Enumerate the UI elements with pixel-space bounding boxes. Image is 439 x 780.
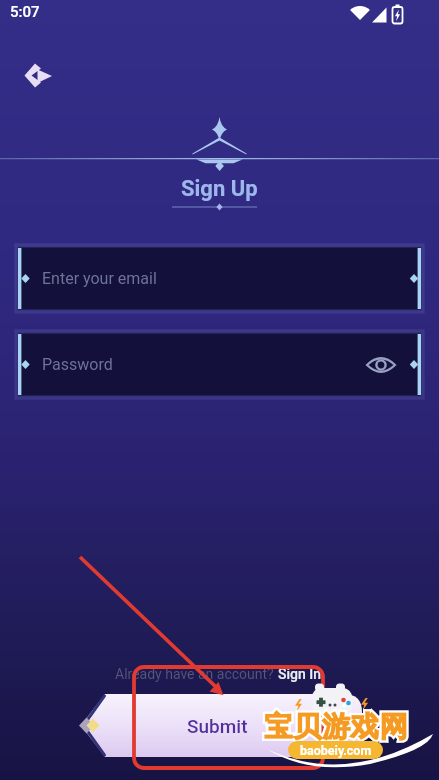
staticText: Password — [42, 355, 113, 374]
button[interactable]: Password — [18, 333, 421, 396]
staticText: Submit — [187, 715, 248, 737]
button[interactable] — [14, 55, 60, 95]
button[interactable]: Submit — [81, 694, 362, 757]
button[interactable]: Already have an account? — [115, 666, 439, 682]
staticText: Sign Up — [181, 176, 258, 202]
staticText: 宝贝游戏网 — [264, 709, 408, 744]
staticText: 宝贝游戏网 — [264, 709, 408, 744]
button[interactable] — [362, 346, 400, 384]
staticText: 5:07 — [10, 3, 40, 21]
staticText: baobeiy.com — [300, 743, 372, 758]
staticText: Enter your email — [42, 269, 157, 288]
button[interactable]: Enter your email — [18, 247, 421, 310]
staticText: Already have an account? — [115, 666, 278, 682]
staticText: Sign In — [278, 666, 321, 682]
